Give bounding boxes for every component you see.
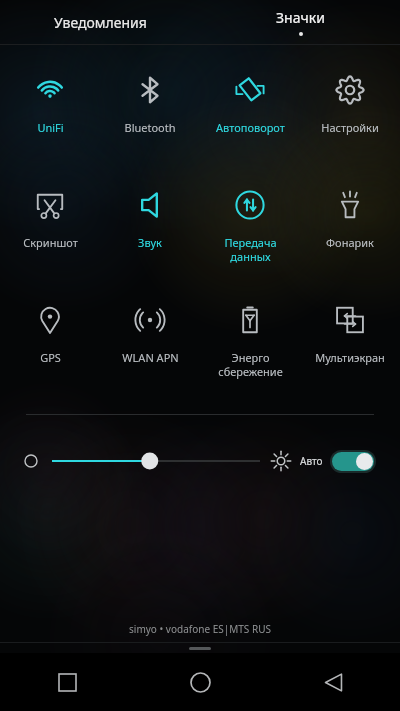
staticText: Мультиэкран — [315, 350, 385, 365]
button[interactable]: Home — [134, 653, 267, 711]
button[interactable]: WLAN APN — [100, 289, 200, 404]
staticText: Фонарик — [326, 235, 374, 250]
staticText: Bluetooth — [124, 120, 176, 135]
staticText: Уведомления — [54, 13, 147, 32]
button[interactable]: Уведомления — [0, 0, 200, 44]
button[interactable]: Автоповорот — [200, 59, 300, 174]
button[interactable]: Энерго сбережение — [200, 289, 300, 404]
button[interactable]: Звук — [100, 174, 200, 289]
button[interactable]: Фонарик — [300, 174, 400, 289]
button[interactable]: Мультиэкран — [300, 289, 400, 404]
other: Brightness — [272, 452, 290, 470]
staticText: Настройки — [321, 120, 379, 135]
button[interactable]: Скриншот — [0, 174, 100, 289]
staticText: Авто — [300, 454, 323, 468]
staticText: Автоповорот — [216, 120, 285, 135]
staticText: Звук — [138, 235, 162, 250]
button[interactable]: Настройки — [300, 59, 400, 174]
button[interactable]: Auto brightness toggle — [330, 450, 376, 473]
button[interactable] — [52, 449, 260, 473]
staticText: Скриншот — [23, 235, 78, 250]
button[interactable]: UniFi — [0, 59, 100, 174]
staticText: Передача данных — [224, 235, 277, 264]
staticText: Значки — [276, 8, 325, 27]
staticText: WLAN APN — [122, 350, 179, 365]
staticText: Энерго сбережение — [218, 350, 283, 379]
staticText: UniFi — [37, 120, 64, 135]
button[interactable]: Передача данных — [200, 174, 300, 289]
button[interactable]: Back — [267, 653, 400, 711]
button[interactable]: Bluetooth — [100, 59, 200, 174]
staticText: simyo • vodafone ES|MTS RUS — [0, 622, 400, 636]
button[interactable]: GPS — [0, 289, 100, 404]
button[interactable]: Значки — [200, 0, 400, 44]
staticText: GPS — [40, 350, 61, 365]
button[interactable]: Recents — [0, 653, 134, 711]
